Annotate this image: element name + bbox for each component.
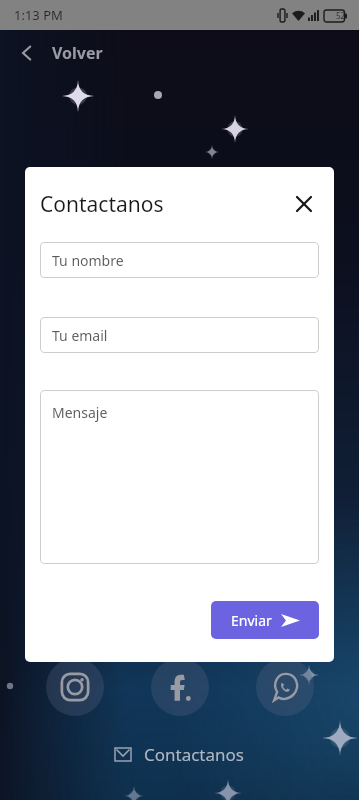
staticText: Tu email bbox=[52, 326, 108, 345]
staticText: 1:13 PM bbox=[14, 6, 63, 24]
staticText: Enviar bbox=[231, 611, 272, 630]
button[interactable]: Close bbox=[289, 189, 319, 219]
staticText: Tu nombre bbox=[52, 251, 124, 270]
staticText: Contactanos bbox=[144, 743, 244, 766]
button[interactable]: Back bbox=[0, 30, 359, 75]
button[interactable]: Instagram bbox=[46, 658, 104, 716]
button[interactable]: Facebook bbox=[151, 658, 209, 716]
staticText: Volver bbox=[52, 42, 103, 64]
button[interactable]: WhatsApp bbox=[256, 658, 314, 716]
button[interactable]: Tu nombre bbox=[40, 242, 319, 278]
staticText: Mensaje bbox=[52, 403, 108, 422]
button[interactable]: Contactanos bbox=[115, 743, 244, 766]
staticText: 52 bbox=[336, 10, 346, 21]
button[interactable]: Mensaje bbox=[40, 390, 319, 564]
staticText: Contactanos bbox=[40, 190, 164, 219]
other: Back bbox=[18, 44, 36, 62]
button[interactable]: Tu email bbox=[40, 317, 319, 353]
button[interactable]: Enviar bbox=[211, 601, 319, 639]
